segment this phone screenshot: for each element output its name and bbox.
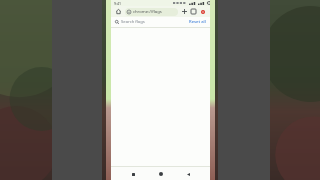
button[interactable]: Home <box>114 7 123 16</box>
button[interactable]: Back <box>183 169 193 179</box>
button[interactable]: New tab <box>180 7 189 16</box>
button[interactable]: Switch tabs <box>189 7 198 16</box>
staticText: Reset all <box>189 19 206 25</box>
staticText: chrome://flags <box>133 9 162 15</box>
button[interactable]: Recent apps <box>128 169 138 179</box>
button[interactable]: Home <box>156 169 166 179</box>
button[interactable]: chrome://flags <box>125 8 178 16</box>
staticText: 9:41 <box>114 1 121 6</box>
button[interactable]: Search flags <box>111 17 210 27</box>
button[interactable]: Stop recording <box>198 7 207 16</box>
staticText: Search flags <box>121 19 145 25</box>
